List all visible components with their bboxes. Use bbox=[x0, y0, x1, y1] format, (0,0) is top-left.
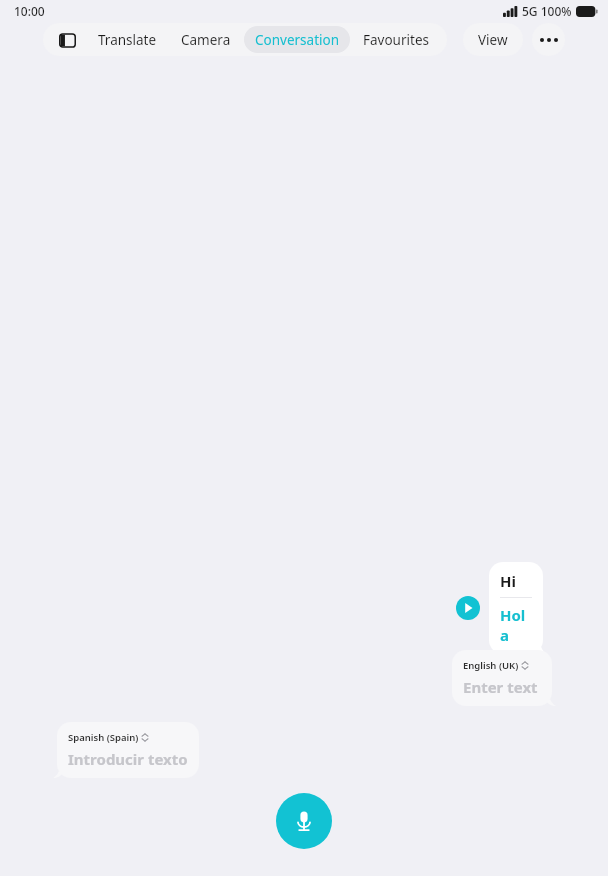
staticText: Introducir texto bbox=[68, 749, 188, 769]
button[interactable]: Translate bbox=[87, 26, 168, 53]
staticText: Translate bbox=[98, 31, 157, 49]
button[interactable]: More options bbox=[532, 23, 565, 56]
staticText: English (UK) bbox=[463, 659, 519, 672]
button[interactable]: Sidebar bbox=[54, 27, 80, 53]
button[interactable]: Camera bbox=[170, 26, 242, 53]
staticText: Conversation bbox=[255, 31, 339, 49]
staticText: 10:00 bbox=[14, 3, 45, 19]
button[interactable]: Play translation bbox=[456, 596, 480, 620]
button[interactable]: English (UK) bbox=[452, 650, 552, 706]
staticText: Camera bbox=[181, 31, 231, 49]
staticText: Spanish (Spain) bbox=[68, 731, 139, 744]
button[interactable]: Conversation bbox=[244, 26, 350, 53]
button[interactable]: Spanish (Spain) bbox=[57, 722, 199, 778]
button[interactable]: Record voice bbox=[276, 793, 332, 849]
staticText: View bbox=[478, 31, 508, 49]
staticText: Enter text bbox=[463, 677, 538, 697]
staticText: Favourites bbox=[363, 31, 429, 49]
button[interactable]: Favourites bbox=[352, 26, 440, 53]
button[interactable]: Hi bbox=[489, 562, 543, 654]
button[interactable]: View bbox=[463, 23, 523, 56]
staticText: Hi bbox=[500, 571, 516, 591]
staticText: Hola bbox=[500, 605, 532, 645]
staticText: 5G 100% bbox=[522, 3, 572, 19]
